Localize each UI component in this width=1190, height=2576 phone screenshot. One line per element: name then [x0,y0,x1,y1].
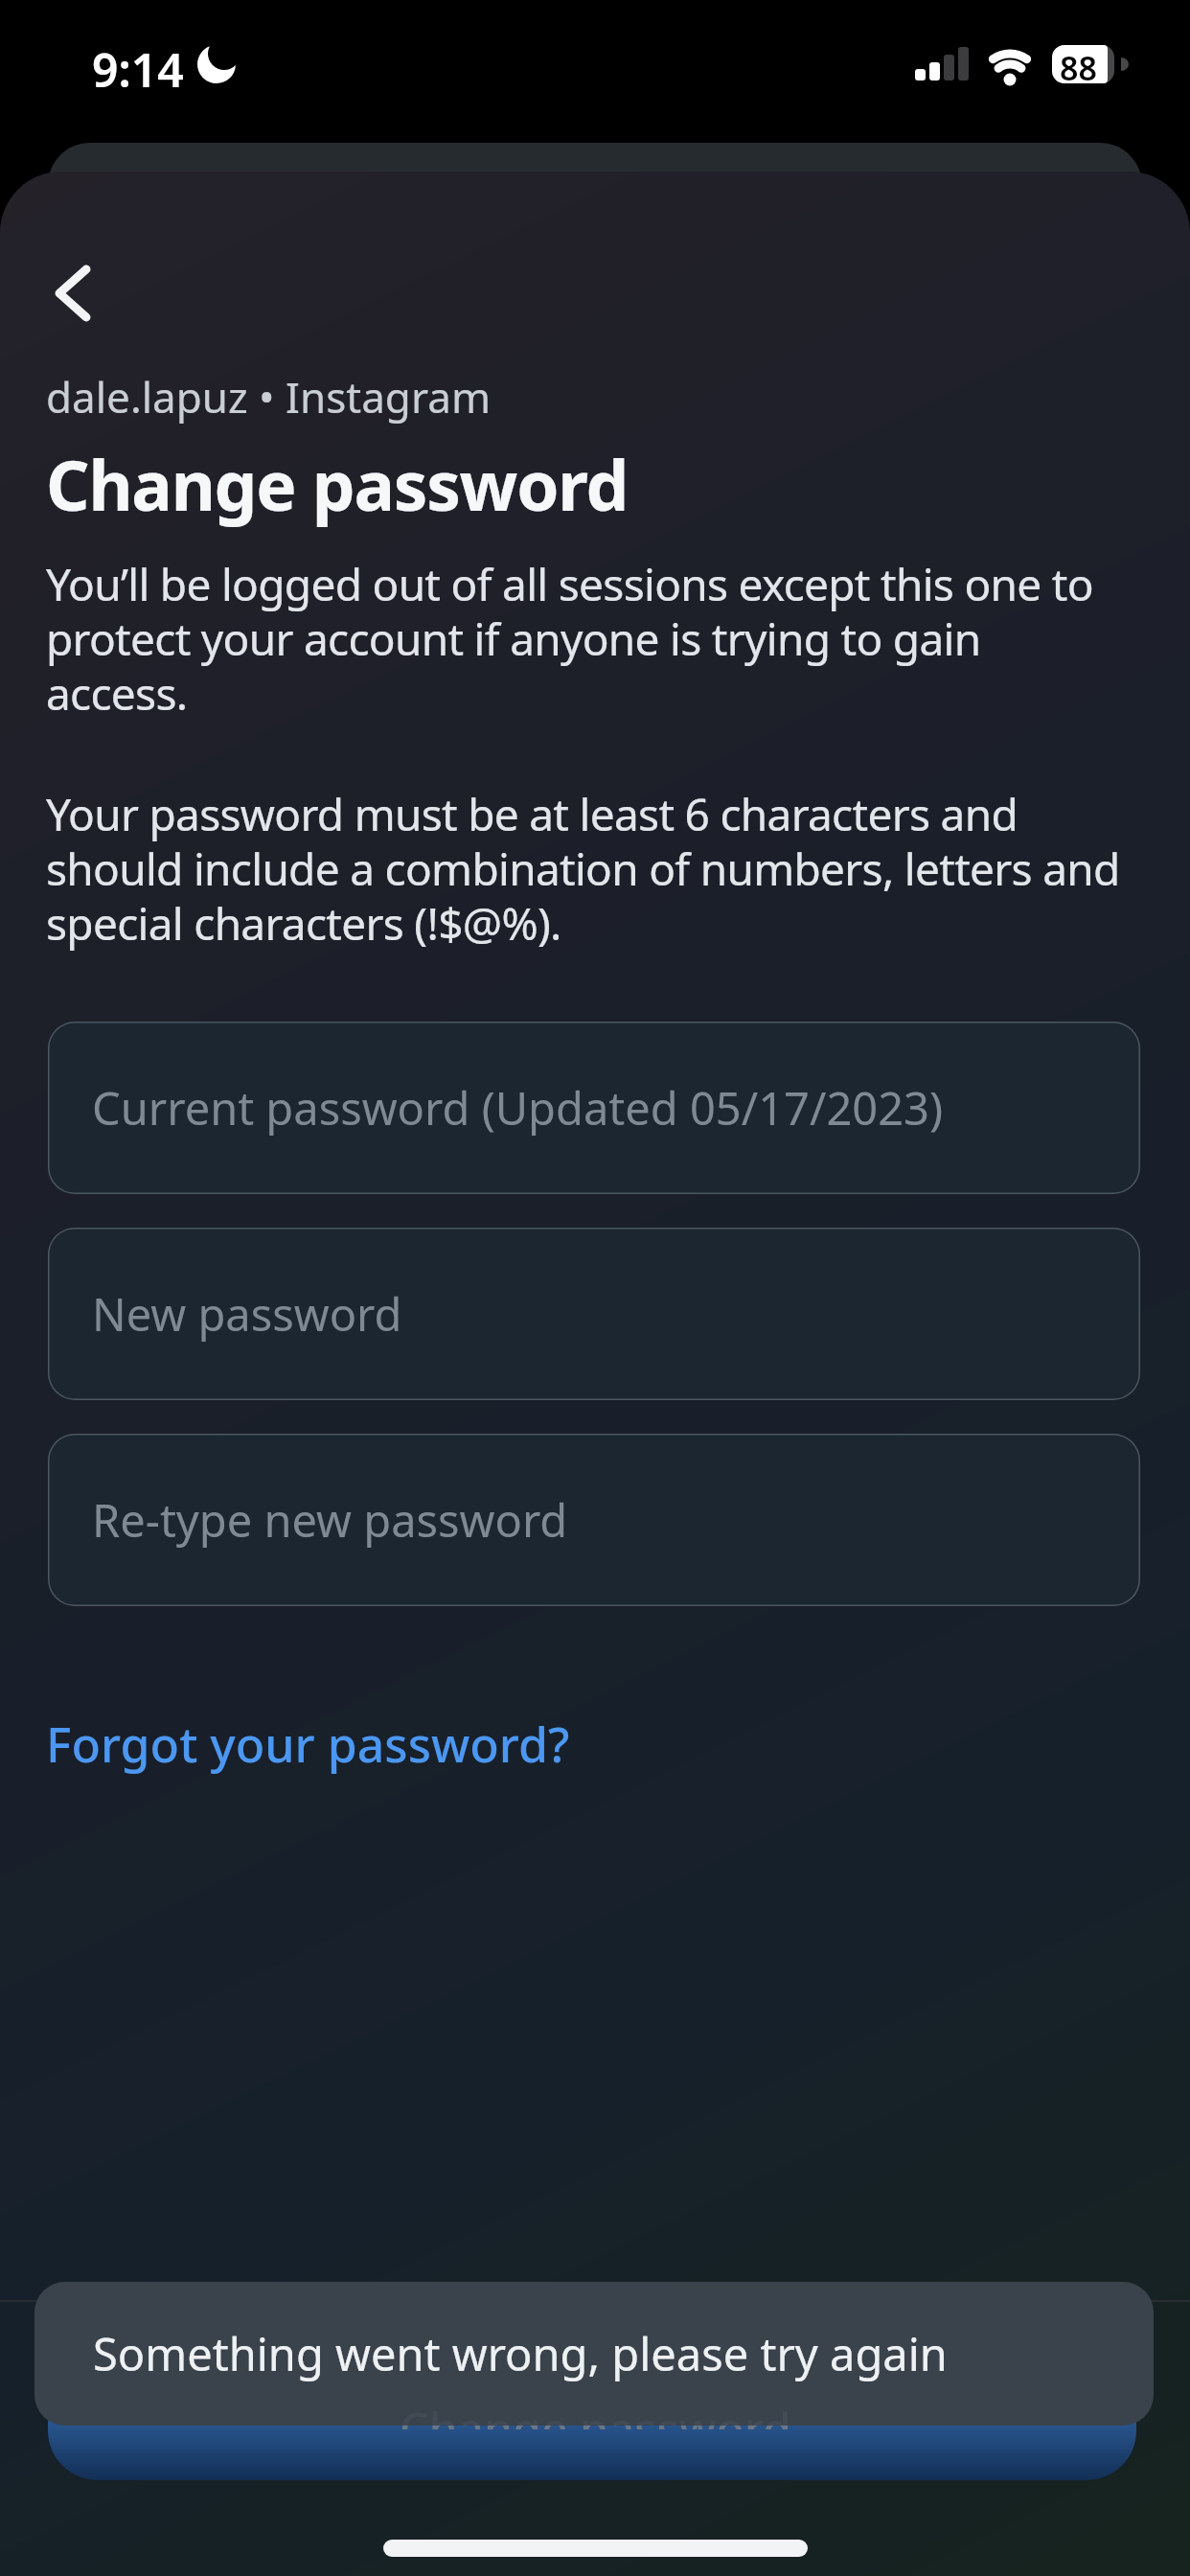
staticText: You’ll be logged out of all sessions exc… [46,554,1127,723]
button[interactable]: New password [48,1228,1140,1400]
button[interactable]: Re-type new password [48,1434,1140,1606]
button[interactable]: Forgot your password? [46,1712,570,1777]
staticText: Re-type new password [92,1489,568,1551]
staticText: 88 [1060,46,1097,90]
staticText: Change password [46,438,629,531]
staticText: New password [92,1283,402,1345]
button[interactable]: Something went wrong, please try again [34,2282,1154,2426]
staticText: Current password (Updated 05/17/2023) [92,1077,944,1138]
staticText: dale.lapuz • Instagram [46,368,492,425]
staticText: Change password [400,2426,791,2429]
button[interactable] [48,2361,1136,2480]
staticText: Your password must be at least 6 charact… [46,784,1127,953]
button[interactable]: Current password (Updated 05/17/2023) [48,1022,1140,1194]
staticText: 9:14 [92,38,184,101]
button[interactable] [38,248,107,336]
staticText: Something went wrong, please try again [93,2323,948,2384]
